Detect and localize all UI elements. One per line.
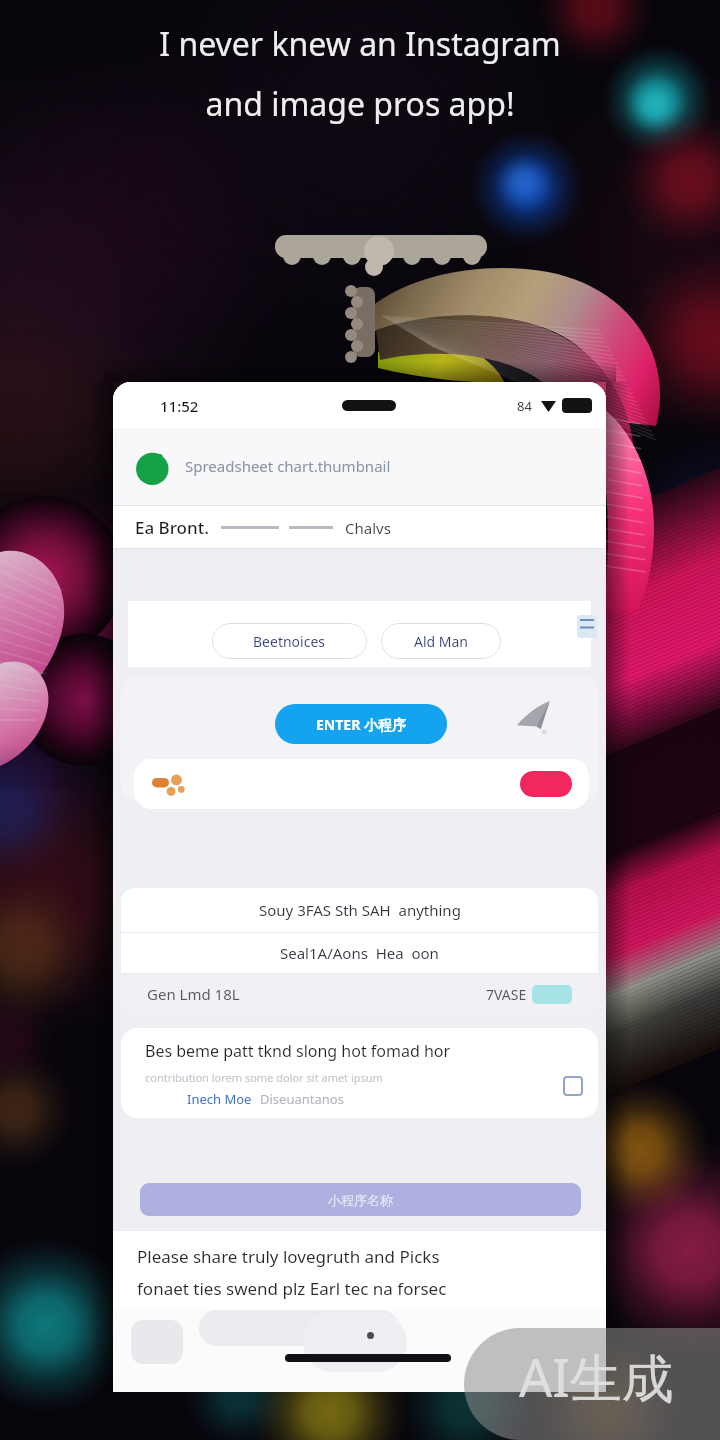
button[interactable]: Copy — [577, 615, 597, 638]
button[interactable]: Home — [285, 1354, 451, 1362]
staticText: I never knew an Instagram — [159, 22, 561, 66]
staticText: Spreadsheet chart.thumbnail — [185, 456, 391, 476]
staticText: Souy 3FAS Sth SAH anything — [259, 900, 461, 920]
staticText: contribution lorem some dolor sit amet i… — [145, 1070, 383, 1085]
button[interactable]: Keyboard — [131, 1320, 183, 1364]
button[interactable]: Send — [517, 700, 551, 734]
button[interactable]: Beetnoices — [212, 623, 367, 659]
button[interactable]: Seal1A/Aons Hea oon — [121, 933, 598, 973]
button[interactable]: Select — [563, 1076, 583, 1096]
button[interactable]: Souy 3FAS Sth SAH anything — [121, 888, 598, 932]
staticText: 7VASE — [486, 985, 527, 1004]
staticText: Inech Moe — [187, 1090, 252, 1108]
staticText: Bes beme patt tknd slong hot fomad hor — [145, 1040, 451, 1062]
staticText: Ea Bront. — [135, 516, 209, 539]
button[interactable]: Ald Man — [381, 623, 501, 659]
button[interactable]: Record — [520, 771, 572, 797]
staticText: Beetnoices — [253, 632, 326, 651]
staticText: Seal1A/Aons Hea oon — [280, 943, 439, 963]
staticText: AI生成 — [519, 1341, 674, 1412]
staticText: 84 — [517, 397, 532, 415]
staticText: fonaet ties swend plz Earl tec na forsec — [137, 1277, 447, 1300]
staticText: Chalvs — [345, 518, 391, 538]
button[interactable]: Bes beme patt tknd slong hot fomad hor — [121, 1028, 598, 1118]
button[interactable]: Ea Bront. — [113, 506, 606, 549]
staticText: Ald Man — [414, 632, 469, 651]
staticText: and image pros app! — [205, 82, 515, 126]
staticText: ENTER 小程序 — [316, 715, 406, 734]
button[interactable]: ENTER 小程序 — [275, 704, 447, 744]
button[interactable]: Gen Lmd 18L — [121, 974, 598, 1014]
button[interactable]: 小程序名称 — [140, 1183, 581, 1216]
staticText: Diseuantanos — [260, 1090, 344, 1108]
button[interactable]: Spreadsheet chart.thumbnail — [113, 428, 606, 506]
staticText: Gen Lmd 18L — [147, 984, 240, 1004]
staticText: Please share truly lovegruth and Picks — [137, 1245, 440, 1268]
staticText: 小程序名称 — [328, 1192, 393, 1208]
staticText: 11:52 — [160, 396, 199, 416]
